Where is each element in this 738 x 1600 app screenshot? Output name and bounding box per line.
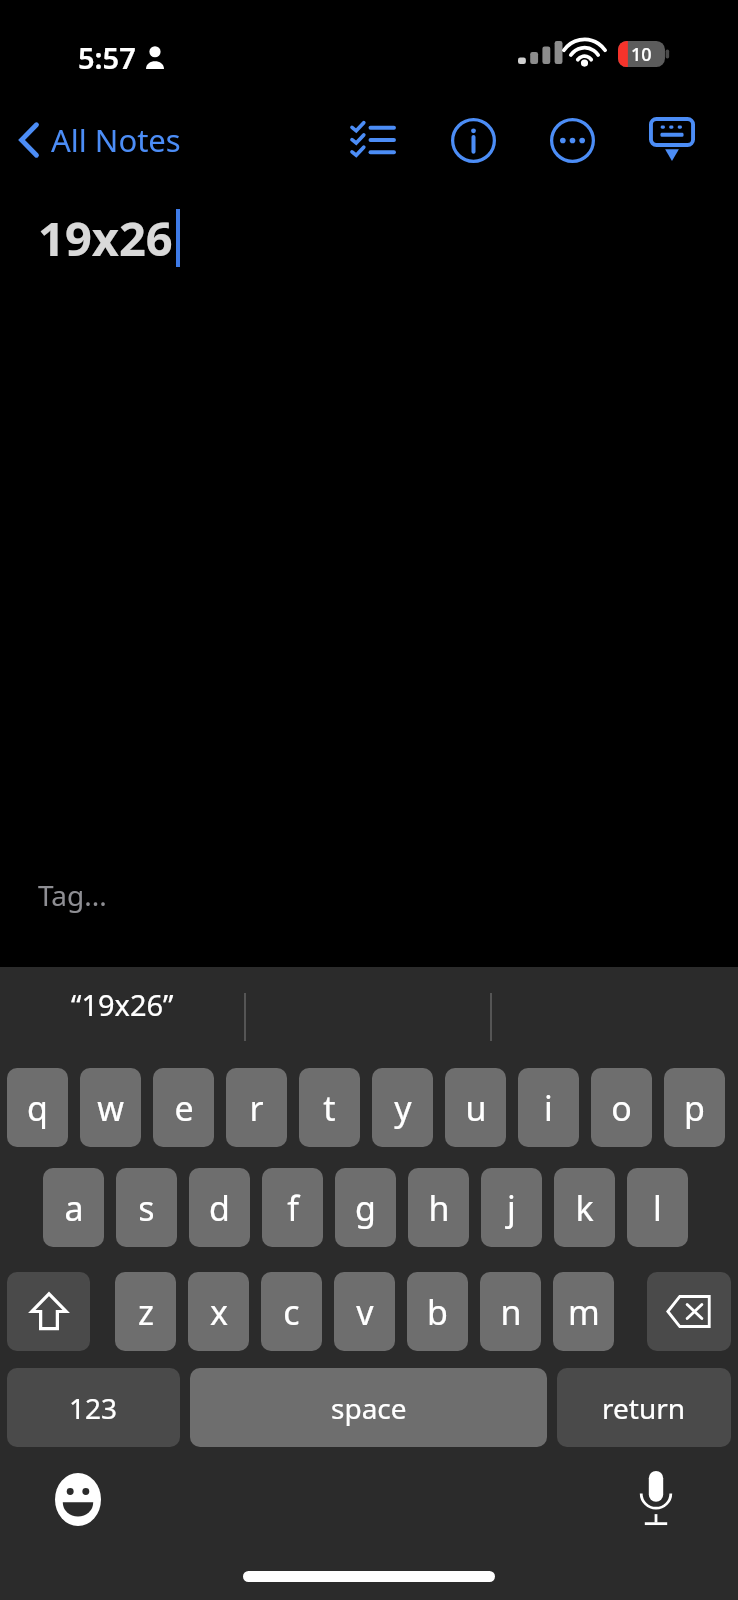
button[interactable]: Emoji: [38, 1459, 118, 1539]
staticText: x: [210, 1289, 228, 1335]
staticText: p: [684, 1085, 705, 1131]
button[interactable]: g: [335, 1168, 396, 1247]
button[interactable]: w: [80, 1068, 141, 1147]
button[interactable]: h: [408, 1168, 469, 1247]
staticText: t: [323, 1085, 336, 1131]
button[interactable]: l: [627, 1168, 688, 1247]
staticText: l: [653, 1185, 662, 1231]
button[interactable]: q: [7, 1068, 68, 1147]
staticText: f: [287, 1185, 299, 1231]
staticText: space: [331, 1389, 407, 1427]
button[interactable]: p: [664, 1068, 725, 1147]
button[interactable]: d: [189, 1168, 250, 1247]
button[interactable]: x: [188, 1272, 249, 1351]
staticText: “19x26”: [71, 985, 174, 1024]
staticText: v: [356, 1289, 374, 1335]
staticText: u: [465, 1085, 487, 1131]
button[interactable]: f: [262, 1168, 323, 1247]
button[interactable]: Hide keyboard: [638, 108, 706, 170]
staticText: j: [507, 1185, 516, 1231]
staticText: i: [544, 1085, 553, 1131]
button[interactable]: “19x26”: [0, 967, 245, 1042]
staticText: a: [64, 1185, 84, 1231]
button[interactable]: space: [190, 1368, 547, 1447]
button[interactable]: u: [445, 1068, 506, 1147]
button[interactable]: Dictation: [616, 1459, 696, 1539]
staticText: c: [283, 1289, 300, 1335]
button[interactable]: return: [557, 1368, 731, 1447]
button[interactable]: i: [518, 1068, 579, 1147]
button[interactable]: Checklist: [338, 112, 408, 168]
staticText: s: [138, 1185, 155, 1231]
staticText: n: [500, 1289, 522, 1335]
button[interactable]: 123: [7, 1368, 180, 1447]
button[interactable]: k: [554, 1168, 615, 1247]
button[interactable]: All Notes: [10, 112, 189, 168]
button[interactable]: e: [153, 1068, 214, 1147]
button[interactable]: More options: [539, 112, 605, 168]
staticText: h: [428, 1185, 450, 1231]
button[interactable]: Shift: [7, 1272, 90, 1351]
button[interactable]: y: [372, 1068, 433, 1147]
button[interactable]: a: [43, 1168, 104, 1247]
staticText: return: [602, 1389, 686, 1427]
button[interactable]: m: [553, 1272, 614, 1351]
button[interactable]: r: [226, 1068, 287, 1147]
staticText: o: [611, 1085, 632, 1131]
staticText: w: [97, 1085, 124, 1131]
button[interactable]: c: [261, 1272, 322, 1351]
staticText: 5:57: [78, 38, 136, 77]
button[interactable]: b: [407, 1272, 468, 1351]
button[interactable]: v: [334, 1272, 395, 1351]
button[interactable]: o: [591, 1068, 652, 1147]
button[interactable]: t: [299, 1068, 360, 1147]
staticText: q: [27, 1085, 48, 1131]
button[interactable]: z: [115, 1272, 176, 1351]
staticText: k: [575, 1185, 594, 1231]
staticText: r: [249, 1085, 264, 1131]
staticText: e: [174, 1085, 194, 1131]
staticText: g: [355, 1185, 376, 1231]
staticText: y: [394, 1085, 412, 1131]
staticText: m: [568, 1289, 600, 1335]
staticText: All Notes: [51, 119, 181, 161]
button[interactable]: n: [480, 1272, 541, 1351]
button[interactable]: Tag...: [38, 876, 107, 914]
button[interactable]: Backspace: [647, 1272, 731, 1351]
staticText: d: [209, 1185, 230, 1231]
staticText: b: [427, 1289, 448, 1335]
staticText: 10: [631, 42, 652, 67]
staticText: z: [138, 1289, 154, 1335]
staticText: 19x26: [38, 206, 173, 270]
button[interactable]: j: [481, 1168, 542, 1247]
button[interactable]: Info: [440, 112, 506, 168]
staticText: 123: [69, 1389, 118, 1427]
button[interactable]: s: [116, 1168, 177, 1247]
